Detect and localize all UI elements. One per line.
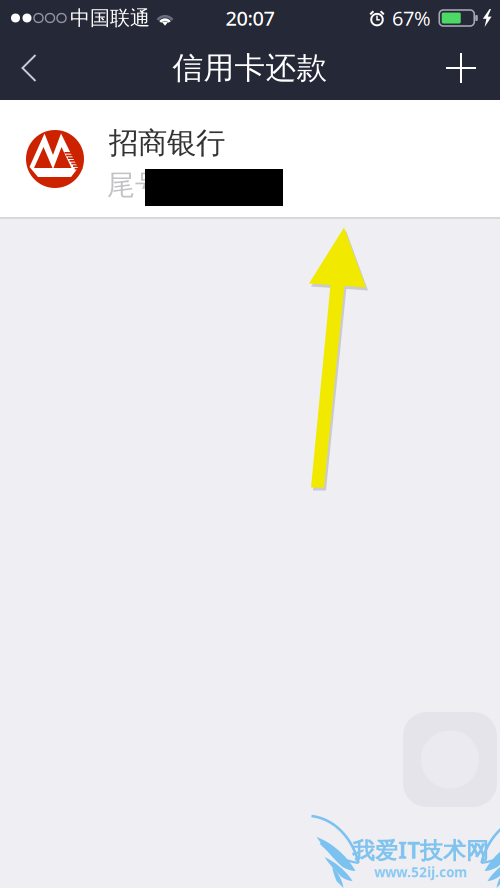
staticText: 20:07 — [225, 5, 274, 31]
button[interactable]: Back — [0, 38, 54, 97]
staticText: 尾号 — [107, 168, 163, 202]
staticText: 中国联通 — [70, 6, 150, 30]
button[interactable]: Add card — [429, 38, 500, 98]
staticText: 信用卡还款 — [172, 49, 327, 87]
staticText: 我爱IT技术网 — [352, 835, 489, 865]
staticText: www.52ij.com — [374, 863, 467, 881]
button[interactable]: AssistiveTouch — [403, 712, 497, 807]
button[interactable]: 招商银行 — [0, 100, 500, 217]
staticText: 招商银行 — [109, 125, 225, 161]
staticText: 67% — [392, 5, 431, 31]
